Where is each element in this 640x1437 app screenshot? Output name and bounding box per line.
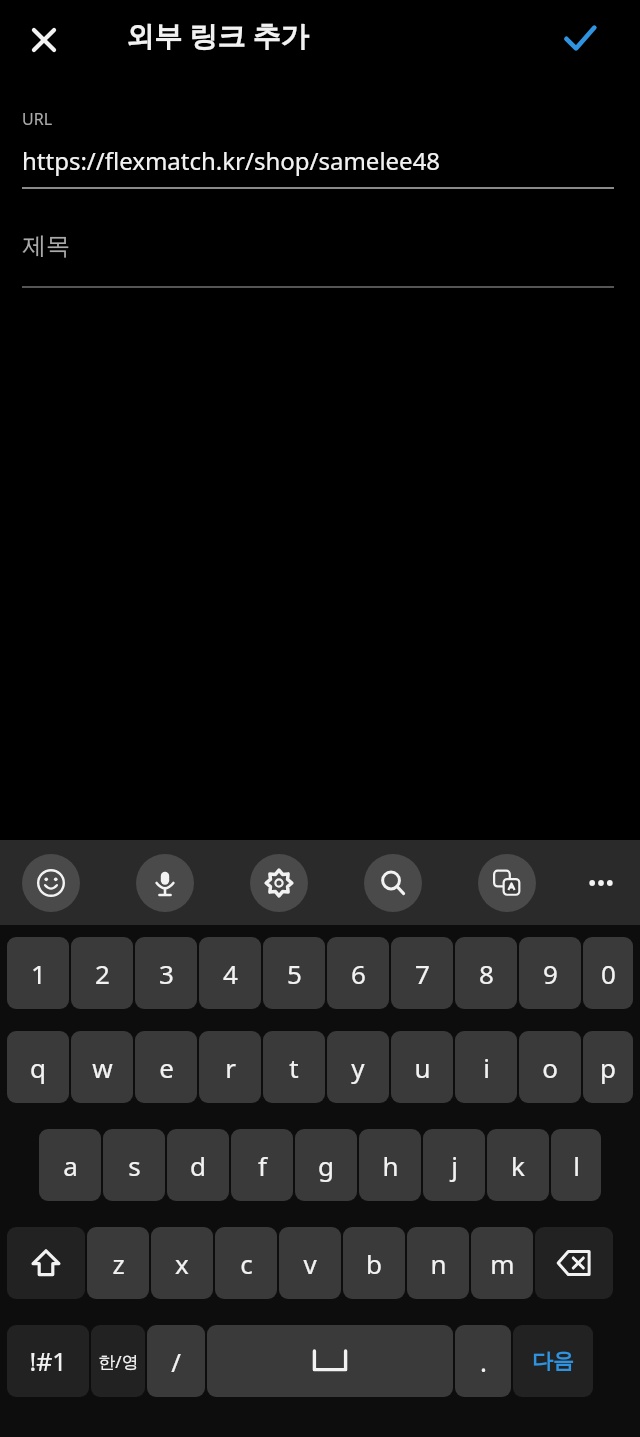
- staticText: 외부 링크 추가: [126, 16, 309, 54]
- staticText: b: [366, 1246, 382, 1281]
- staticText: q: [30, 1050, 46, 1085]
- button[interactable]: 0: [583, 937, 633, 1009]
- button[interactable]: x: [151, 1227, 213, 1299]
- button[interactable]: /: [147, 1325, 205, 1397]
- staticText: o: [542, 1050, 558, 1085]
- staticText: 2: [95, 956, 110, 991]
- button[interactable]: .: [455, 1325, 511, 1397]
- staticText: URL: [22, 108, 53, 130]
- button[interactable]: k: [487, 1129, 549, 1201]
- staticText: f: [258, 1148, 267, 1183]
- staticText: j: [451, 1148, 458, 1183]
- staticText: x: [175, 1246, 189, 1281]
- staticText: https://flexmatch.kr/shop/samelee48: [22, 144, 441, 177]
- staticText: 6: [351, 956, 366, 991]
- staticText: g: [318, 1148, 334, 1183]
- button[interactable]: d: [167, 1129, 229, 1201]
- button[interactable]: Search: [364, 854, 422, 912]
- staticText: 한/영: [98, 1350, 139, 1373]
- button[interactable]: 1: [7, 937, 69, 1009]
- staticText: z: [112, 1246, 125, 1281]
- button[interactable]: g: [295, 1129, 357, 1201]
- button[interactable]: q: [7, 1031, 69, 1103]
- staticText: y: [351, 1050, 365, 1085]
- button[interactable]: c: [215, 1227, 277, 1299]
- staticText: a: [63, 1148, 78, 1183]
- button[interactable]: i: [455, 1031, 517, 1103]
- button[interactable]: r: [199, 1031, 261, 1103]
- staticText: 5: [287, 956, 302, 991]
- button[interactable]: s: [103, 1129, 165, 1201]
- button[interactable]: v: [279, 1227, 341, 1299]
- staticText: e: [159, 1050, 174, 1085]
- button[interactable]: URL: [22, 76, 614, 189]
- staticText: p: [600, 1050, 616, 1085]
- staticText: u: [414, 1050, 431, 1085]
- button[interactable]: 9: [519, 937, 581, 1009]
- button[interactable]: 4: [199, 937, 261, 1009]
- button[interactable]: Backspace: [535, 1227, 613, 1299]
- button[interactable]: n: [407, 1227, 469, 1299]
- button[interactable]: 7: [391, 937, 453, 1009]
- button[interactable]: Settings: [250, 854, 308, 912]
- button[interactable]: y: [327, 1031, 389, 1103]
- button[interactable]: u: [391, 1031, 453, 1103]
- button[interactable]: a: [39, 1129, 101, 1201]
- button[interactable]: f: [231, 1129, 293, 1201]
- button[interactable]: t: [263, 1031, 325, 1103]
- staticText: w: [92, 1050, 113, 1085]
- button[interactable]: Confirm: [546, 4, 614, 72]
- staticText: h: [382, 1148, 399, 1183]
- button[interactable]: h: [359, 1129, 421, 1201]
- staticText: r: [225, 1050, 236, 1085]
- staticText: 제목: [22, 231, 70, 261]
- staticText: .: [480, 1344, 487, 1379]
- button[interactable]: Voice input: [136, 854, 194, 912]
- staticText: 8: [479, 956, 494, 991]
- staticText: t: [289, 1050, 299, 1085]
- staticText: !#1: [29, 1344, 67, 1378]
- staticText: s: [128, 1148, 141, 1183]
- staticText: 7: [415, 956, 430, 991]
- button[interactable]: j: [423, 1129, 485, 1201]
- button[interactable]: w: [71, 1031, 133, 1103]
- staticText: c: [240, 1246, 253, 1281]
- button[interactable]: Translate: [478, 854, 536, 912]
- button[interactable]: l: [551, 1129, 601, 1201]
- staticText: l: [573, 1148, 580, 1183]
- button[interactable]: More options: [576, 858, 626, 908]
- button[interactable]: b: [343, 1227, 405, 1299]
- button[interactable]: Close: [10, 6, 78, 74]
- button[interactable]: !#1: [7, 1325, 89, 1397]
- button[interactable]: e: [135, 1031, 197, 1103]
- button[interactable]: z: [87, 1227, 149, 1299]
- button[interactable]: p: [583, 1031, 633, 1103]
- staticText: 4: [223, 956, 238, 991]
- staticText: m: [490, 1246, 515, 1281]
- button[interactable]: 8: [455, 937, 517, 1009]
- button[interactable]: 3: [135, 937, 197, 1009]
- staticText: 0: [601, 956, 616, 991]
- button[interactable]: 6: [327, 937, 389, 1009]
- staticText: /: [171, 1344, 181, 1379]
- staticText: 1: [31, 956, 46, 991]
- button[interactable]: 다음: [513, 1325, 593, 1397]
- staticText: 다음: [532, 1348, 574, 1374]
- staticText: i: [483, 1050, 490, 1085]
- button[interactable]: 2: [71, 937, 133, 1009]
- staticText: 3: [159, 956, 174, 991]
- staticText: n: [430, 1246, 447, 1281]
- button[interactable]: Space: [207, 1325, 453, 1397]
- staticText: 9: [543, 956, 558, 991]
- button[interactable]: 한/영: [91, 1325, 145, 1397]
- staticText: v: [303, 1246, 317, 1281]
- button[interactable]: 5: [263, 937, 325, 1009]
- staticText: k: [511, 1148, 525, 1183]
- button[interactable]: o: [519, 1031, 581, 1103]
- button[interactable]: m: [471, 1227, 533, 1299]
- button[interactable]: 제목: [22, 189, 614, 288]
- staticText: d: [190, 1148, 206, 1183]
- button[interactable]: Emoji: [22, 854, 80, 912]
- button[interactable]: Shift: [7, 1227, 85, 1299]
